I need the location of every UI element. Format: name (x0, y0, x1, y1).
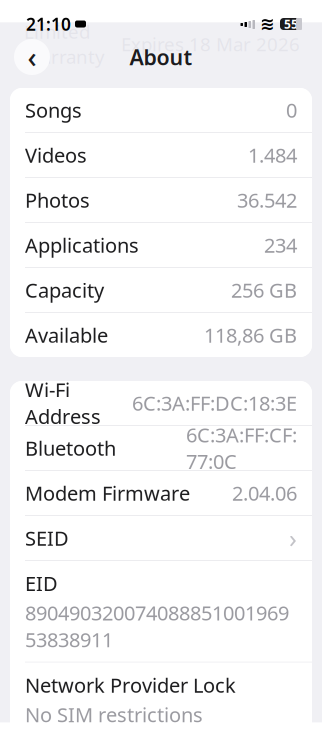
staticText: About (129, 43, 192, 71)
staticText: Applications (25, 232, 139, 258)
staticText: ≋ (260, 14, 275, 34)
staticText: Limited Warranty (24, 19, 105, 69)
staticText: 0 (286, 97, 297, 123)
staticText: Videos (25, 142, 87, 168)
staticText: 89049032007408885100196953838911 (25, 600, 289, 653)
button[interactable]: EID (10, 561, 312, 662)
staticText: Modem Firmware (25, 480, 190, 506)
button[interactable]: Bluetooth (10, 426, 312, 470)
staticText: 234 (264, 232, 297, 258)
staticText: 1.484 (248, 142, 297, 168)
button[interactable]: Videos (10, 133, 312, 177)
button[interactable]: Back (14, 39, 50, 75)
staticText: 2.04.06 (232, 480, 297, 506)
staticText: ‹ (27, 38, 36, 76)
staticText: EID (25, 570, 58, 597)
staticText: Network Provider Lock (25, 672, 236, 698)
staticText: Bluetooth (25, 435, 116, 461)
staticText: 6C:3A:FF:CF:77:0C (186, 421, 297, 474)
button[interactable]: Photos (10, 178, 312, 222)
staticText: Available (25, 322, 108, 348)
staticText: 55 (284, 16, 298, 32)
staticText: Photos (25, 187, 90, 213)
staticText: No SIM restrictions (25, 701, 203, 728)
staticText: 36.542 (237, 187, 297, 213)
staticText: Expires 18 Mar 2026 (121, 32, 300, 56)
button[interactable]: Applications (10, 223, 312, 267)
button[interactable]: Network Provider Lock (10, 663, 312, 737)
staticText: 256 GB (231, 277, 297, 303)
staticText: Capacity (25, 277, 104, 303)
button[interactable]: Wi-Fi Address (10, 381, 312, 425)
staticText: Wi-Fi Address (25, 376, 101, 429)
staticText: 6C:3A:FF:DC:18:3E (132, 390, 297, 416)
button[interactable]: Available (10, 313, 312, 357)
button[interactable]: Songs (10, 88, 312, 132)
staticText: 118,86 GB (204, 322, 297, 348)
staticText: SEID (25, 525, 69, 551)
staticText: Songs (25, 97, 82, 123)
staticText: 21:10 (26, 12, 71, 35)
button[interactable]: Modem Firmware (10, 471, 312, 515)
button[interactable]: SEID (10, 516, 312, 560)
button[interactable]: Capacity (10, 268, 312, 312)
staticText: › (289, 521, 297, 555)
